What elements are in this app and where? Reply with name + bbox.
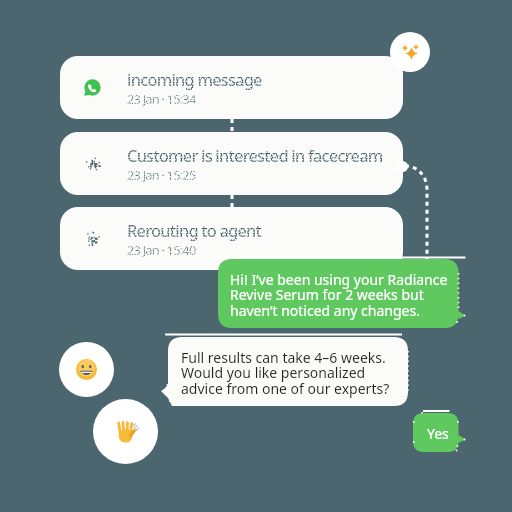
staticText: 23 Jan · 15:25: [127, 166, 196, 183]
staticText: Customer is interested in facecream: [127, 144, 383, 166]
button[interactable]: Rerouting to agent: [60, 207, 403, 270]
button[interactable]: Full results can take 4–6 weeks. Would y…: [161, 337, 408, 406]
staticText: incoming message: [127, 68, 262, 90]
staticText: 23 Jan · 15:40: [127, 241, 196, 258]
staticText: Hi! I’ve been using your Radiance Revive…: [230, 270, 448, 320]
button[interactable]: Hi! I’ve been using your Radiance Revive…: [218, 259, 466, 328]
staticText: Rerouting to agent: [127, 219, 262, 241]
button[interactable]: Customer is interested in facecream: [60, 132, 403, 195]
staticText: Yes: [427, 424, 449, 443]
staticText: Full results can take 4–6 weeks. Would y…: [181, 348, 390, 398]
button[interactable]: AI assistant: [390, 32, 430, 72]
button[interactable]: Yes: [413, 413, 466, 452]
staticText: 23 Jan · 15:34: [127, 90, 196, 107]
button[interactable]: incoming message: [60, 56, 403, 119]
